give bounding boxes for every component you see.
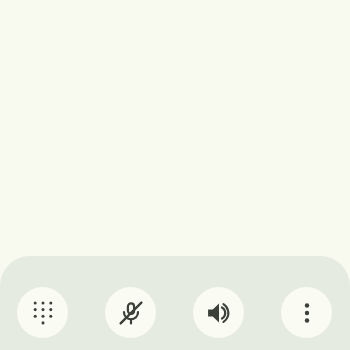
button[interactable]: Speaker (193, 287, 244, 338)
button[interactable]: Dialpad (17, 287, 68, 338)
button[interactable]: More options (281, 287, 332, 338)
button[interactable]: Mute microphone (105, 287, 156, 338)
